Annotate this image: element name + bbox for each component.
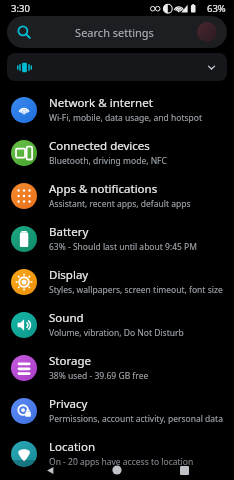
button[interactable]: Connected devices [0,131,234,174]
staticText: Location [49,439,96,455]
staticText: Battery [49,224,89,240]
staticText: Wi-Fi, mobile, data usage, and hotspot [49,112,202,124]
button[interactable]: Search settings [7,16,227,48]
button[interactable]: Network & internet [0,88,234,131]
staticText: Permissions, account activity, personal … [49,413,223,425]
staticText: Connected devices [49,138,150,154]
button[interactable]: Back [33,460,67,480]
button[interactable]: Storage [0,346,234,389]
staticText: 63% - Should last until about 9:45 PM [49,241,197,253]
button[interactable]: Apps & notifications [0,174,234,217]
staticText: Storage [49,353,91,369]
staticText: Network & internet [49,95,153,111]
staticText: 63% [207,2,226,15]
staticText: 38% used - 39.69 GB free [49,370,149,382]
staticText: Styles, wallpapers, screen timeout, font… [49,284,223,296]
staticText: Volume, vibration, Do Not Disturb [49,327,184,339]
staticText: Privacy [49,396,88,412]
staticText: Sound [49,310,84,326]
button[interactable]: Expand [7,53,227,81]
button[interactable]: Recents [167,460,201,480]
staticText: On - 20 apps have access to location [49,456,194,468]
button[interactable]: Home [100,460,134,480]
staticText: Bluetooth, driving mode, NFC [49,155,167,167]
button[interactable]: Sound [0,303,234,346]
staticText: Assistant, recent apps, default apps [49,198,191,210]
button[interactable]: Account [197,22,217,42]
button[interactable]: Display [0,260,234,303]
other: Expand [206,62,217,73]
button[interactable]: Battery [0,217,234,260]
button[interactable]: Location [0,432,234,475]
staticText: Search settings [75,25,154,40]
staticText: Apps & notifications [49,181,158,197]
staticText: Display [49,267,89,283]
staticText: 3:30 [11,2,30,15]
button[interactable]: Privacy [0,389,234,432]
